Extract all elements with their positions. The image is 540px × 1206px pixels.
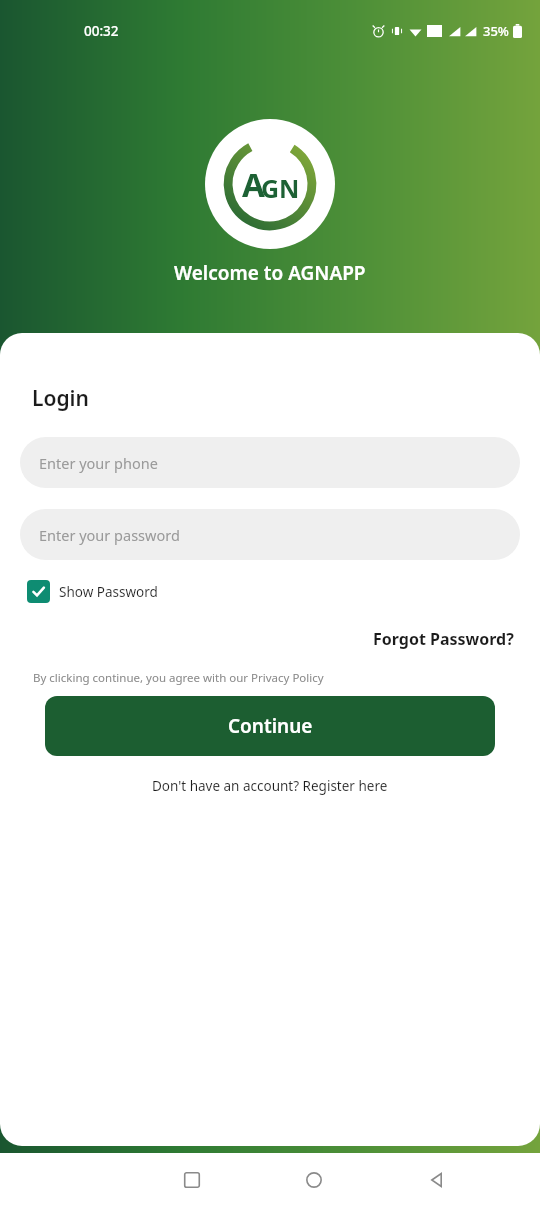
button[interactable]: Forgot Password? bbox=[373, 628, 540, 650]
staticText: A bbox=[242, 162, 265, 207]
button[interactable]: Home bbox=[292, 1158, 336, 1202]
staticText: Continue bbox=[228, 713, 313, 739]
button[interactable]: Show Password bbox=[27, 580, 158, 603]
staticText: Show Password bbox=[59, 583, 158, 601]
staticText: Welcome to AGNAPP bbox=[174, 260, 366, 286]
button[interactable]: Don't have an account? Register here bbox=[152, 777, 388, 795]
staticText: GN bbox=[261, 171, 300, 205]
staticText: Login bbox=[32, 384, 89, 413]
staticText: By clicking continue, you agree with our… bbox=[33, 670, 324, 686]
button[interactable]: Back bbox=[414, 1158, 458, 1202]
button[interactable]: Enter your phone bbox=[20, 437, 520, 488]
button[interactable]: Continue bbox=[45, 696, 495, 756]
staticText: 35% bbox=[483, 22, 509, 40]
button[interactable]: Recents bbox=[170, 1158, 214, 1202]
staticText: 00:32 bbox=[84, 22, 119, 40]
button[interactable]: Enter your password bbox=[20, 509, 520, 560]
staticText: Enter your password bbox=[39, 525, 180, 545]
staticText: Enter your phone bbox=[39, 453, 158, 473]
